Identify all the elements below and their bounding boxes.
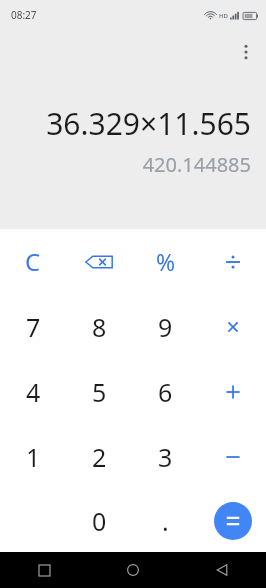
button[interactable]: Home [88,552,177,588]
button[interactable]: Minus [199,424,266,489]
staticText: . [162,504,169,538]
staticText: 2 [92,440,107,474]
staticText: 1 [26,440,41,474]
button[interactable]: Multiply [199,294,266,359]
staticText: HD [219,12,228,20]
button[interactable]: More options [230,36,262,68]
button[interactable]: 7 [0,294,66,359]
button[interactable]: Divide [199,229,266,294]
button[interactable]: 3 [132,424,199,489]
button[interactable]: Percent [132,229,199,294]
staticText: 36.329×11.565 [12,103,251,144]
button[interactable]: 1 [0,424,66,489]
button[interactable]: 0 [66,489,132,552]
staticText: % [156,246,176,277]
staticText: 8 [92,310,107,344]
button[interactable]: 9 [132,294,199,359]
button[interactable]: Recent apps [0,552,88,588]
button[interactable]: 4 [0,359,66,424]
button[interactable]: Backspace [66,229,132,294]
button[interactable]: 8 [66,294,132,359]
button[interactable]: Plus [199,359,266,424]
staticText: 420.144885 [12,151,251,178]
button[interactable]: Equals [214,502,252,540]
button[interactable]: 5 [66,359,132,424]
staticText: 0 [92,504,107,538]
button[interactable]: 2 [66,424,132,489]
staticText: 3 [158,440,173,474]
staticText: 9 [158,310,173,344]
button[interactable]: 6 [132,359,199,424]
staticText: C [25,245,41,278]
button[interactable]: Decimal point [132,489,199,552]
staticText: 08:27 [11,8,37,22]
button[interactable]: Back [177,552,266,588]
button[interactable]: Clear [0,229,66,294]
staticText: 4 [26,375,41,409]
staticText: 7 [26,310,41,344]
staticText: 6 [158,375,173,409]
staticText: 5 [92,375,107,409]
